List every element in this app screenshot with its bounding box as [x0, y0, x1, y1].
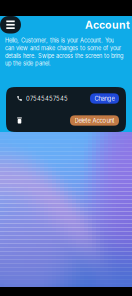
- staticText: 07545457545: [26, 95, 68, 102]
- staticText: Delete Account: [74, 117, 114, 124]
- button[interactable]: Menu: [0, 16, 21, 33]
- button[interactable]: Delete Account: [70, 115, 119, 126]
- button[interactable]: Change: [90, 93, 119, 104]
- staticText: Change: [94, 95, 114, 102]
- staticText: Account: [85, 18, 130, 31]
- staticText: Hello, Customer, this is your Account. Y…: [5, 37, 123, 67]
